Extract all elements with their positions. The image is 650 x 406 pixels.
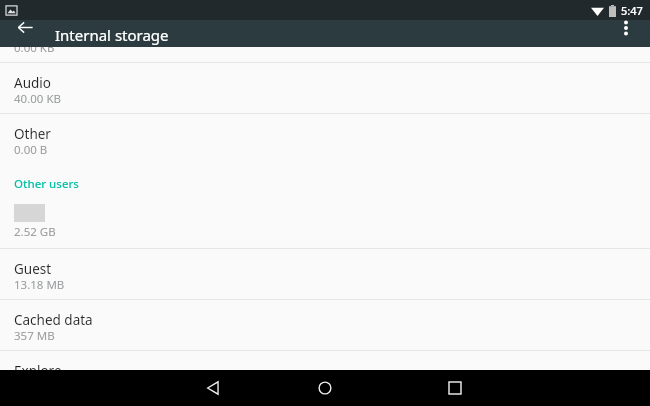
button[interactable]: Other	[0, 114, 650, 164]
button[interactable]: Back	[190, 370, 236, 406]
staticText: Cached data	[14, 311, 93, 329]
staticText: 2.52 GB	[14, 224, 56, 240]
button[interactable]: Guest	[0, 249, 650, 299]
button[interactable]: Other users	[0, 164, 650, 200]
button[interactable]: Explore	[0, 351, 650, 401]
button[interactable]: Recent apps	[432, 370, 478, 406]
button[interactable]: Home	[302, 370, 348, 406]
staticText: 13.18 MB	[14, 277, 65, 293]
button[interactable]: More options	[606, 14, 646, 41]
button[interactable]: Navigate up	[5, 14, 45, 41]
staticText: 5:47	[621, 3, 643, 18]
button[interactable]: 2.52 GB	[0, 200, 650, 248]
staticText: 0.00 KB	[14, 40, 55, 56]
staticText: Audio	[14, 74, 51, 92]
staticText: Internal storage	[55, 25, 169, 45]
staticText: Other	[14, 125, 51, 143]
staticText: 0.00 B	[14, 142, 48, 158]
button[interactable]: Cached data	[0, 300, 650, 350]
staticText: 357 MB	[14, 328, 55, 344]
staticText: Other users	[14, 176, 79, 192]
staticText: Guest	[14, 260, 52, 278]
staticText: 40.00 KB	[14, 91, 61, 107]
button[interactable]: Audio	[0, 63, 650, 113]
staticText: Explore	[14, 362, 62, 380]
